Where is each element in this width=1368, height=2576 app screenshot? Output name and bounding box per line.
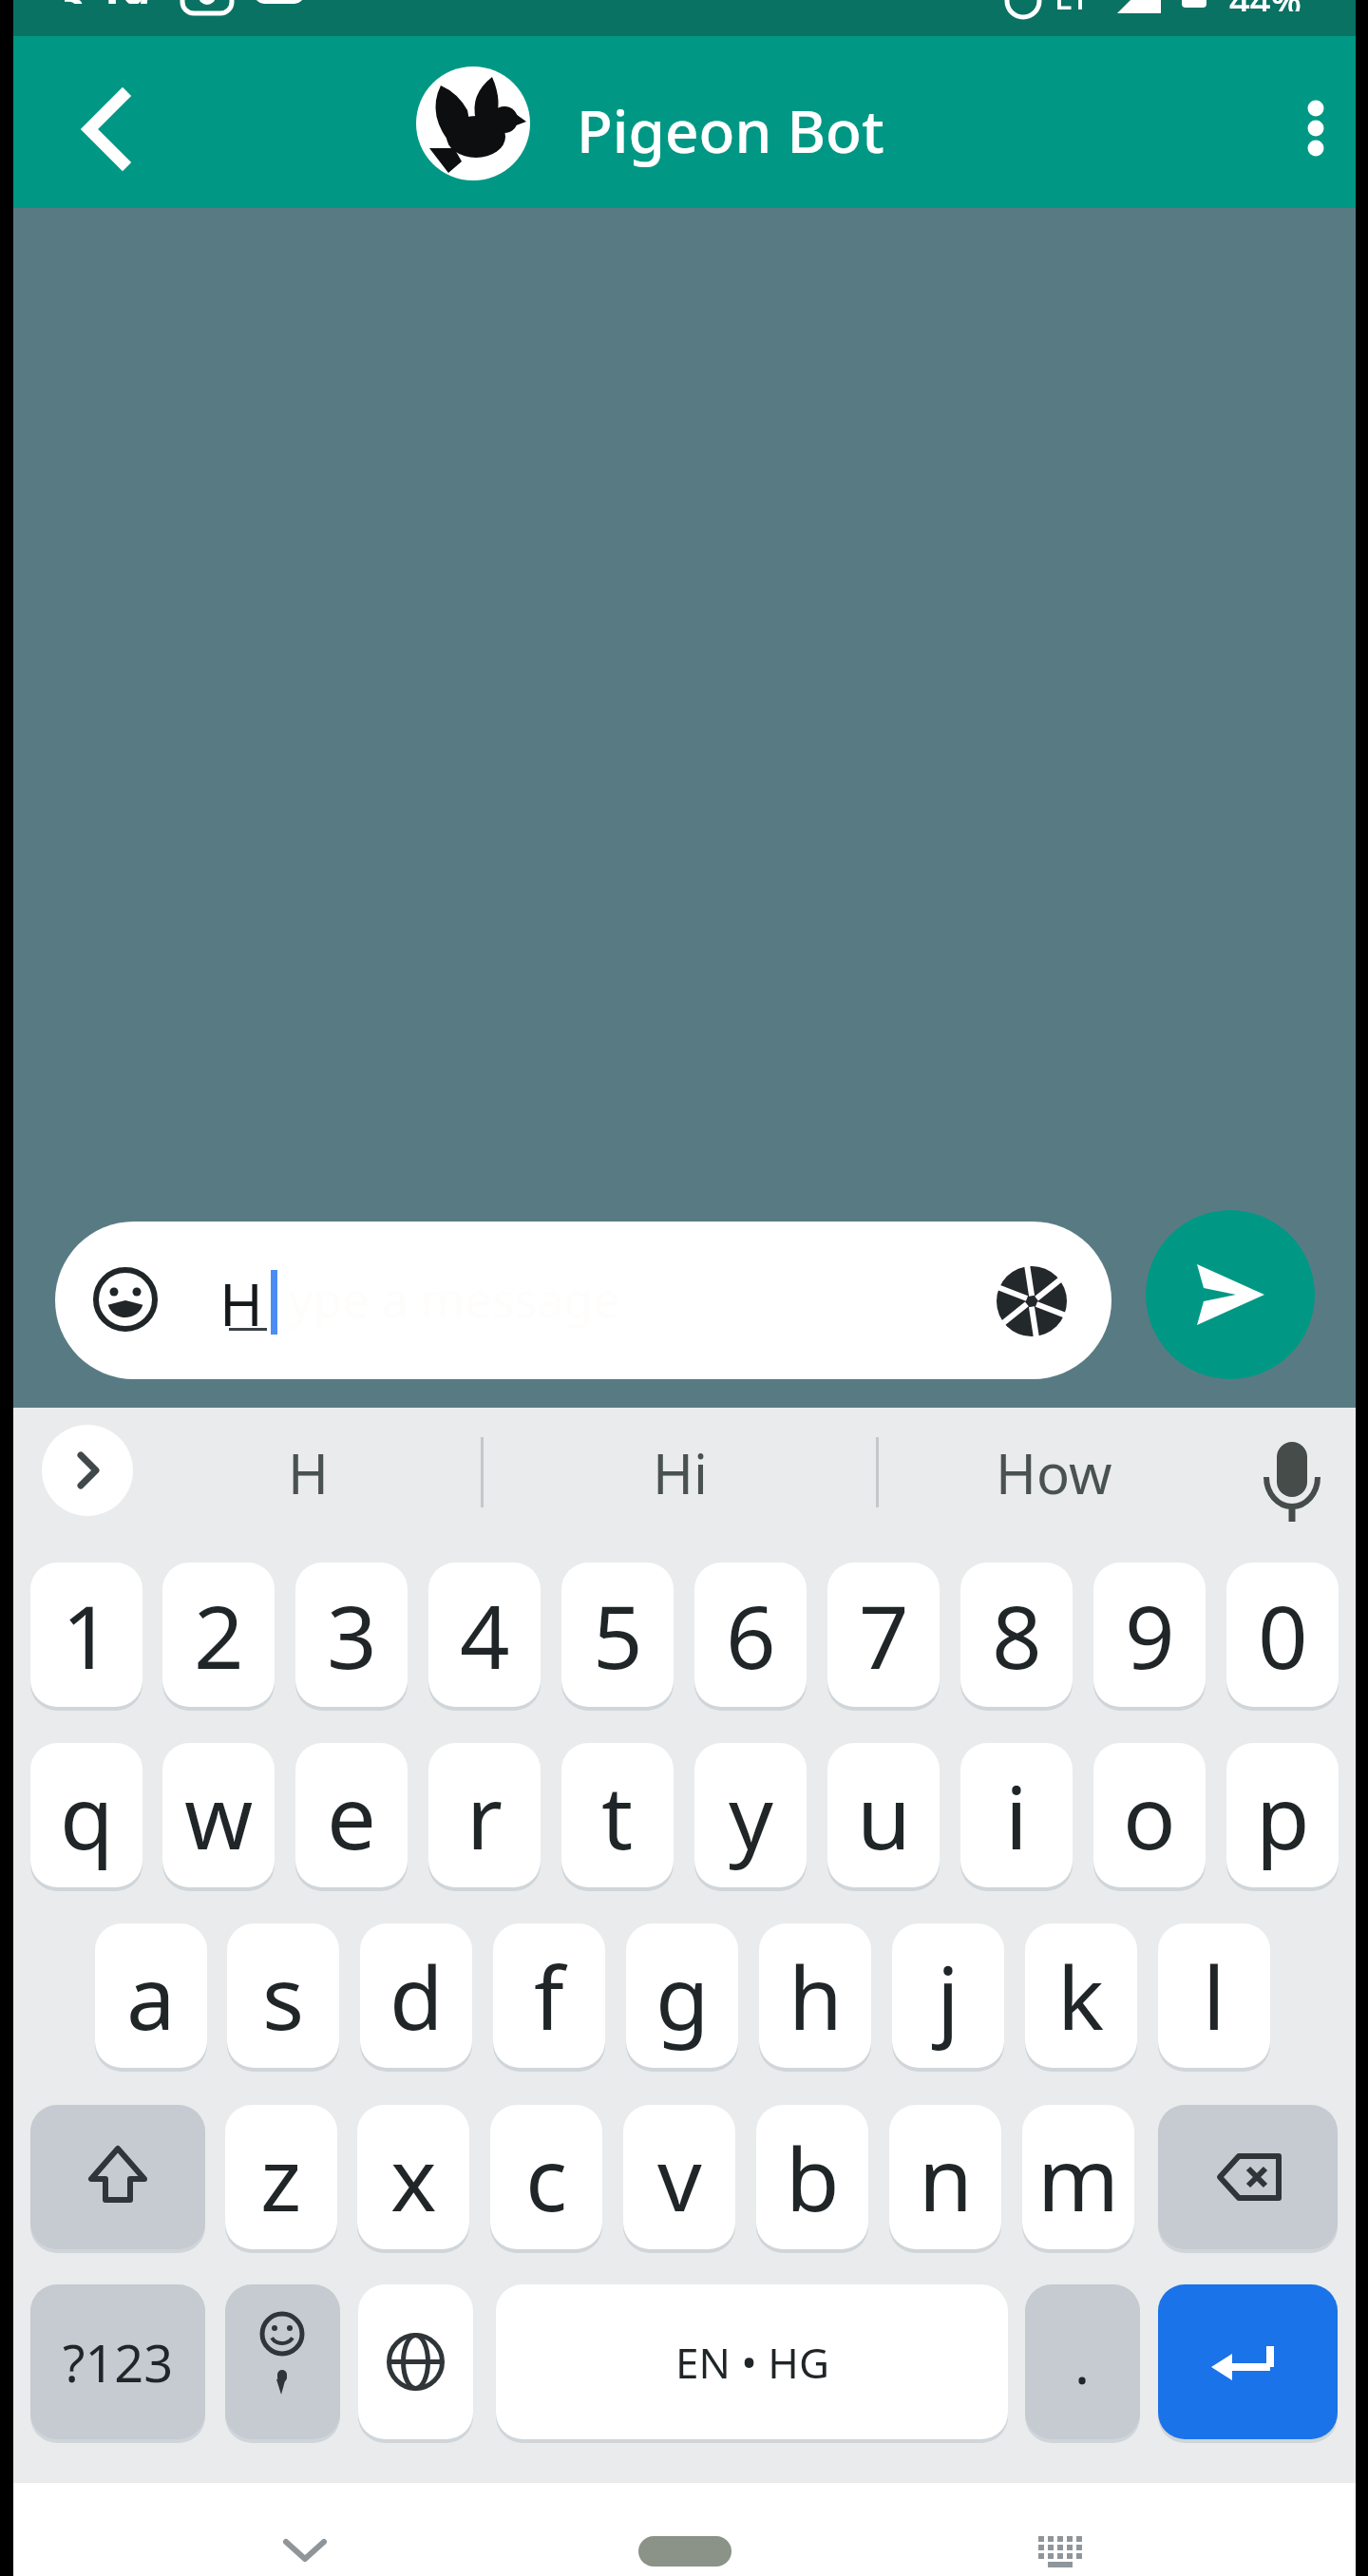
button[interactable]: y [694, 1743, 807, 1887]
button[interactable] [358, 2284, 473, 2439]
staticText: a [126, 1937, 176, 2055]
staticText: ?123 [63, 2327, 174, 2397]
staticText: 9 [1125, 1576, 1175, 1695]
staticText: b [786, 2118, 840, 2237]
staticText: 3:19 [58, 0, 149, 4]
button[interactable]: 7 [827, 1563, 940, 1707]
button[interactable] [638, 2536, 731, 2567]
staticText: x [390, 2118, 437, 2237]
button[interactable]: s [227, 1923, 339, 2068]
button[interactable]: h [759, 1923, 871, 2068]
button[interactable]: w [162, 1743, 275, 1887]
staticText: Pigeon Bot [577, 90, 884, 168]
staticText: h [788, 1937, 843, 2055]
button[interactable]: g [626, 1923, 738, 2068]
button[interactable]: i [960, 1743, 1073, 1887]
staticText: i [1005, 1756, 1028, 1875]
staticText: m [1037, 2118, 1120, 2237]
button[interactable]: c [490, 2105, 602, 2249]
button[interactable]: l [1158, 1923, 1270, 2068]
button[interactable]: e [295, 1743, 408, 1887]
button[interactable]: . [1025, 2284, 1140, 2439]
button[interactable]: x [357, 2105, 469, 2249]
staticText: c [525, 2118, 568, 2237]
staticText: d [389, 1937, 444, 2055]
button[interactable]: 5 [561, 1563, 674, 1707]
button[interactable]: t [561, 1743, 674, 1887]
button[interactable]: f [493, 1923, 605, 2068]
button[interactable] [42, 1425, 133, 1516]
button[interactable] [65, 91, 141, 167]
button[interactable] [1158, 2284, 1338, 2439]
staticText: 8 [992, 1576, 1042, 1695]
staticText: g [655, 1937, 710, 2055]
button[interactable]: k [1025, 1923, 1137, 2068]
staticText: l [1203, 1937, 1225, 2055]
staticText: e [327, 1756, 376, 1875]
button[interactable]: 0 [1226, 1563, 1339, 1707]
button[interactable] [225, 2284, 340, 2439]
button[interactable]: r [428, 1743, 541, 1887]
button[interactable] [30, 2105, 205, 2249]
button[interactable]: v [623, 2105, 735, 2249]
staticText: t [601, 1756, 634, 1875]
button[interactable]: m [1022, 2105, 1134, 2249]
button[interactable]: p [1226, 1743, 1339, 1887]
staticText: 1 [62, 1576, 112, 1695]
button[interactable]: o [1093, 1743, 1206, 1887]
staticText: Hi [653, 1435, 708, 1507]
staticText: j [937, 1937, 959, 2055]
button[interactable]: ?123 [30, 2284, 205, 2439]
staticText: H [219, 1263, 263, 1335]
button[interactable] [282, 2527, 328, 2572]
staticText: k [1057, 1937, 1105, 2055]
button[interactable] [1258, 1430, 1326, 1529]
staticText: v [657, 2118, 702, 2237]
staticText: u [857, 1756, 911, 1875]
button[interactable]: a [95, 1923, 207, 2068]
button[interactable] [1035, 2525, 1088, 2570]
button[interactable] [1297, 91, 1335, 167]
button[interactable]: 2 [162, 1563, 275, 1707]
staticText: q [60, 1756, 114, 1875]
staticText: w [184, 1756, 254, 1875]
button[interactable]: q [30, 1743, 142, 1887]
staticText: LTE [1054, 0, 1106, 11]
button[interactable]: 1 [30, 1563, 142, 1707]
staticText: 7 [859, 1576, 909, 1695]
staticText: s [262, 1937, 305, 2055]
staticText: o [1123, 1756, 1176, 1875]
staticText: r [466, 1756, 503, 1875]
button[interactable] [1158, 2105, 1338, 2249]
button[interactable]: EN • HG [496, 2284, 1008, 2439]
staticText: H [288, 1435, 329, 1507]
button[interactable]: z [225, 2105, 337, 2249]
button[interactable] [55, 1222, 1111, 1379]
staticText: y [729, 1756, 773, 1875]
button[interactable]: 8 [960, 1563, 1073, 1707]
staticText: z [260, 2118, 302, 2237]
staticText: 0 [1258, 1576, 1308, 1695]
staticText: 4 [460, 1576, 510, 1695]
button[interactable] [1146, 1210, 1315, 1379]
button[interactable] [93, 1267, 158, 1332]
staticText: EN • HG [675, 2334, 829, 2391]
staticText: 44% [1229, 0, 1301, 11]
button[interactable]: n [889, 2105, 1001, 2249]
button[interactable]: b [756, 2105, 868, 2249]
staticText: . [1074, 2323, 1091, 2401]
staticText: 2 [194, 1576, 244, 1695]
staticText: n [919, 2118, 973, 2237]
staticText: p [1256, 1756, 1310, 1875]
staticText: f [534, 1937, 564, 2055]
staticText: 3 [327, 1576, 377, 1695]
button[interactable]: d [360, 1923, 472, 2068]
button[interactable]: 4 [428, 1563, 541, 1707]
button[interactable]: 6 [694, 1563, 807, 1707]
button[interactable]: 9 [1093, 1563, 1206, 1707]
button[interactable] [996, 1265, 1068, 1337]
button[interactable]: j [892, 1923, 1004, 2068]
button[interactable]: 3 [295, 1563, 408, 1707]
button[interactable]: u [827, 1743, 940, 1887]
